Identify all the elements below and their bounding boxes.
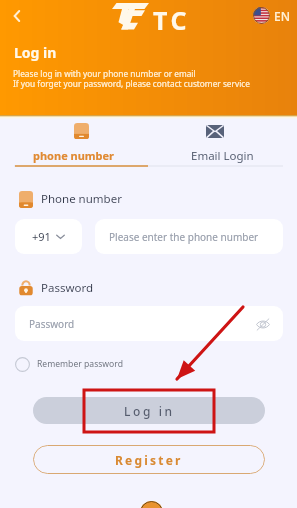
staticText: If you forget your password, please cont…	[13, 78, 250, 89]
staticText: phone number	[33, 148, 115, 163]
staticText: Password	[29, 317, 75, 331]
staticText: EN	[274, 8, 290, 24]
button[interactable]: Show password	[253, 314, 273, 334]
staticText: Email Login	[191, 148, 254, 164]
staticText: Password	[41, 280, 94, 296]
button[interactable]: Password	[15, 306, 283, 341]
staticText: Remember password	[37, 358, 123, 370]
button[interactable]: Back	[5, 4, 29, 28]
staticText: Please log in with your phone number or …	[13, 68, 196, 79]
button[interactable]: Log in	[33, 397, 265, 424]
staticText: Log in	[14, 43, 57, 62]
staticText: Phone number	[41, 191, 122, 207]
button[interactable]: Remember password	[15, 355, 123, 373]
button[interactable]: +91	[15, 219, 82, 254]
button[interactable]: Email Login	[148, 116, 297, 167]
button[interactable]: phone number	[0, 116, 148, 167]
button[interactable]: More login options	[140, 501, 163, 508]
button[interactable]: Please enter the phone number	[95, 219, 283, 254]
staticText: Log in	[124, 403, 175, 419]
staticText: +91	[32, 229, 51, 244]
staticText: Please enter the phone number	[109, 230, 259, 244]
staticText: Register	[115, 452, 183, 468]
button[interactable]: Language English	[253, 7, 290, 24]
button[interactable]: Register	[33, 445, 265, 474]
staticText: TC	[153, 3, 190, 37]
